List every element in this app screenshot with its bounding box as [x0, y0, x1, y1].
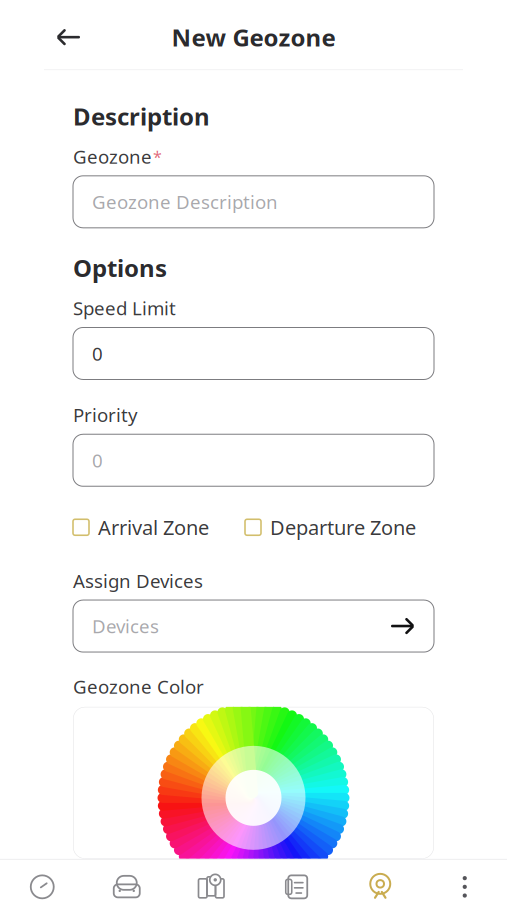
- button[interactable]: Reports: [253, 860, 338, 900]
- staticText: *: [153, 146, 162, 167]
- button[interactable]: Dashboard: [0, 860, 84, 900]
- button[interactable]: More: [422, 860, 507, 900]
- staticText: Departure Zone: [270, 514, 416, 541]
- staticText: Geozone Description: [92, 189, 278, 214]
- button[interactable]: Map: [169, 860, 253, 900]
- button[interactable]: Vehicles: [84, 860, 169, 900]
- staticText: 0: [92, 341, 103, 366]
- staticText: Geozone: [73, 144, 152, 169]
- staticText: Description: [73, 100, 210, 132]
- staticText: Geozone Color: [73, 674, 204, 699]
- staticText: New Geozone: [171, 21, 335, 53]
- staticText: 0: [92, 448, 103, 473]
- button[interactable]: Devices: [73, 600, 434, 652]
- button[interactable]: Geozones: [338, 860, 422, 900]
- button[interactable]: Geozone Description: [73, 176, 434, 228]
- staticText: Options: [73, 252, 167, 284]
- button[interactable]: Back: [46, 14, 92, 60]
- staticText: Arrival Zone: [98, 514, 209, 541]
- button[interactable]: 0: [73, 327, 434, 379]
- button[interactable]: Departure Zone: [245, 510, 416, 544]
- button[interactable]: Arrival Zone: [73, 510, 209, 544]
- staticText: Priority: [73, 402, 138, 427]
- staticText: Assign Devices: [73, 568, 203, 593]
- button[interactable]: 0: [73, 434, 434, 486]
- staticText: Speed Limit: [73, 296, 176, 320]
- staticText: Devices: [92, 614, 159, 638]
